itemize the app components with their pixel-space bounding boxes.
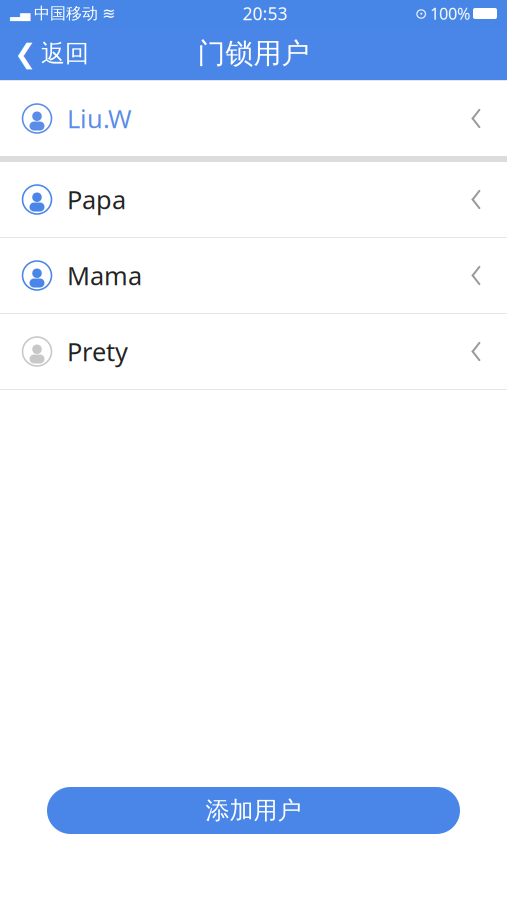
staticText: Papa <box>67 183 126 216</box>
staticText: ❮ <box>14 38 36 69</box>
button[interactable]: Prety <box>0 314 507 389</box>
staticText: 返回 <box>41 39 89 68</box>
staticText: 中国移动 <box>34 4 98 23</box>
staticText: ▂▄ <box>10 6 30 21</box>
button[interactable]: Papa <box>0 162 507 237</box>
button[interactable]: Mama <box>0 238 507 313</box>
staticText: 20:53 <box>242 2 287 25</box>
staticText: Prety <box>67 335 128 368</box>
button[interactable]: ❮ <box>0 27 89 80</box>
staticText: 添加用户 <box>205 796 301 825</box>
staticText: Liu.W <box>67 102 132 135</box>
button[interactable]: Liu.W <box>0 81 507 156</box>
staticText: Mama <box>67 259 142 292</box>
staticText: ≋ <box>102 4 115 23</box>
staticText: ⊙ <box>415 5 427 22</box>
staticText: 100% <box>430 3 470 24</box>
button[interactable]: 添加用户 <box>47 787 460 834</box>
staticText: 门锁用户 <box>197 36 309 71</box>
